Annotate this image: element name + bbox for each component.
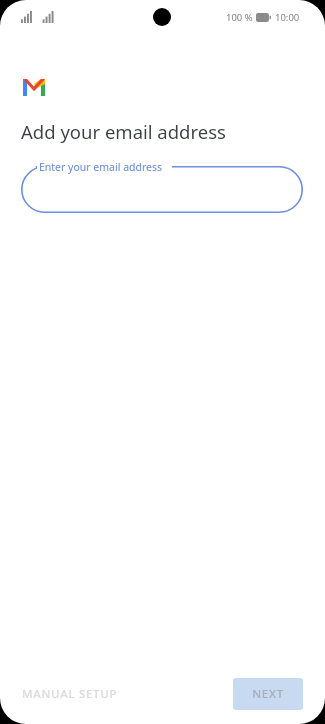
staticText: MANUAL SETUP (22, 686, 118, 702)
staticText: Enter your email address (39, 160, 163, 174)
button[interactable]: MANUAL SETUP (12, 678, 128, 710)
staticText: 10:00 (275, 11, 300, 24)
button[interactable]: NEXT (233, 678, 303, 710)
staticText: 100 % (226, 11, 253, 24)
staticText: Add your email address (21, 119, 226, 144)
button[interactable]: Enter your email address (21, 166, 303, 213)
staticText: NEXT (252, 686, 284, 702)
